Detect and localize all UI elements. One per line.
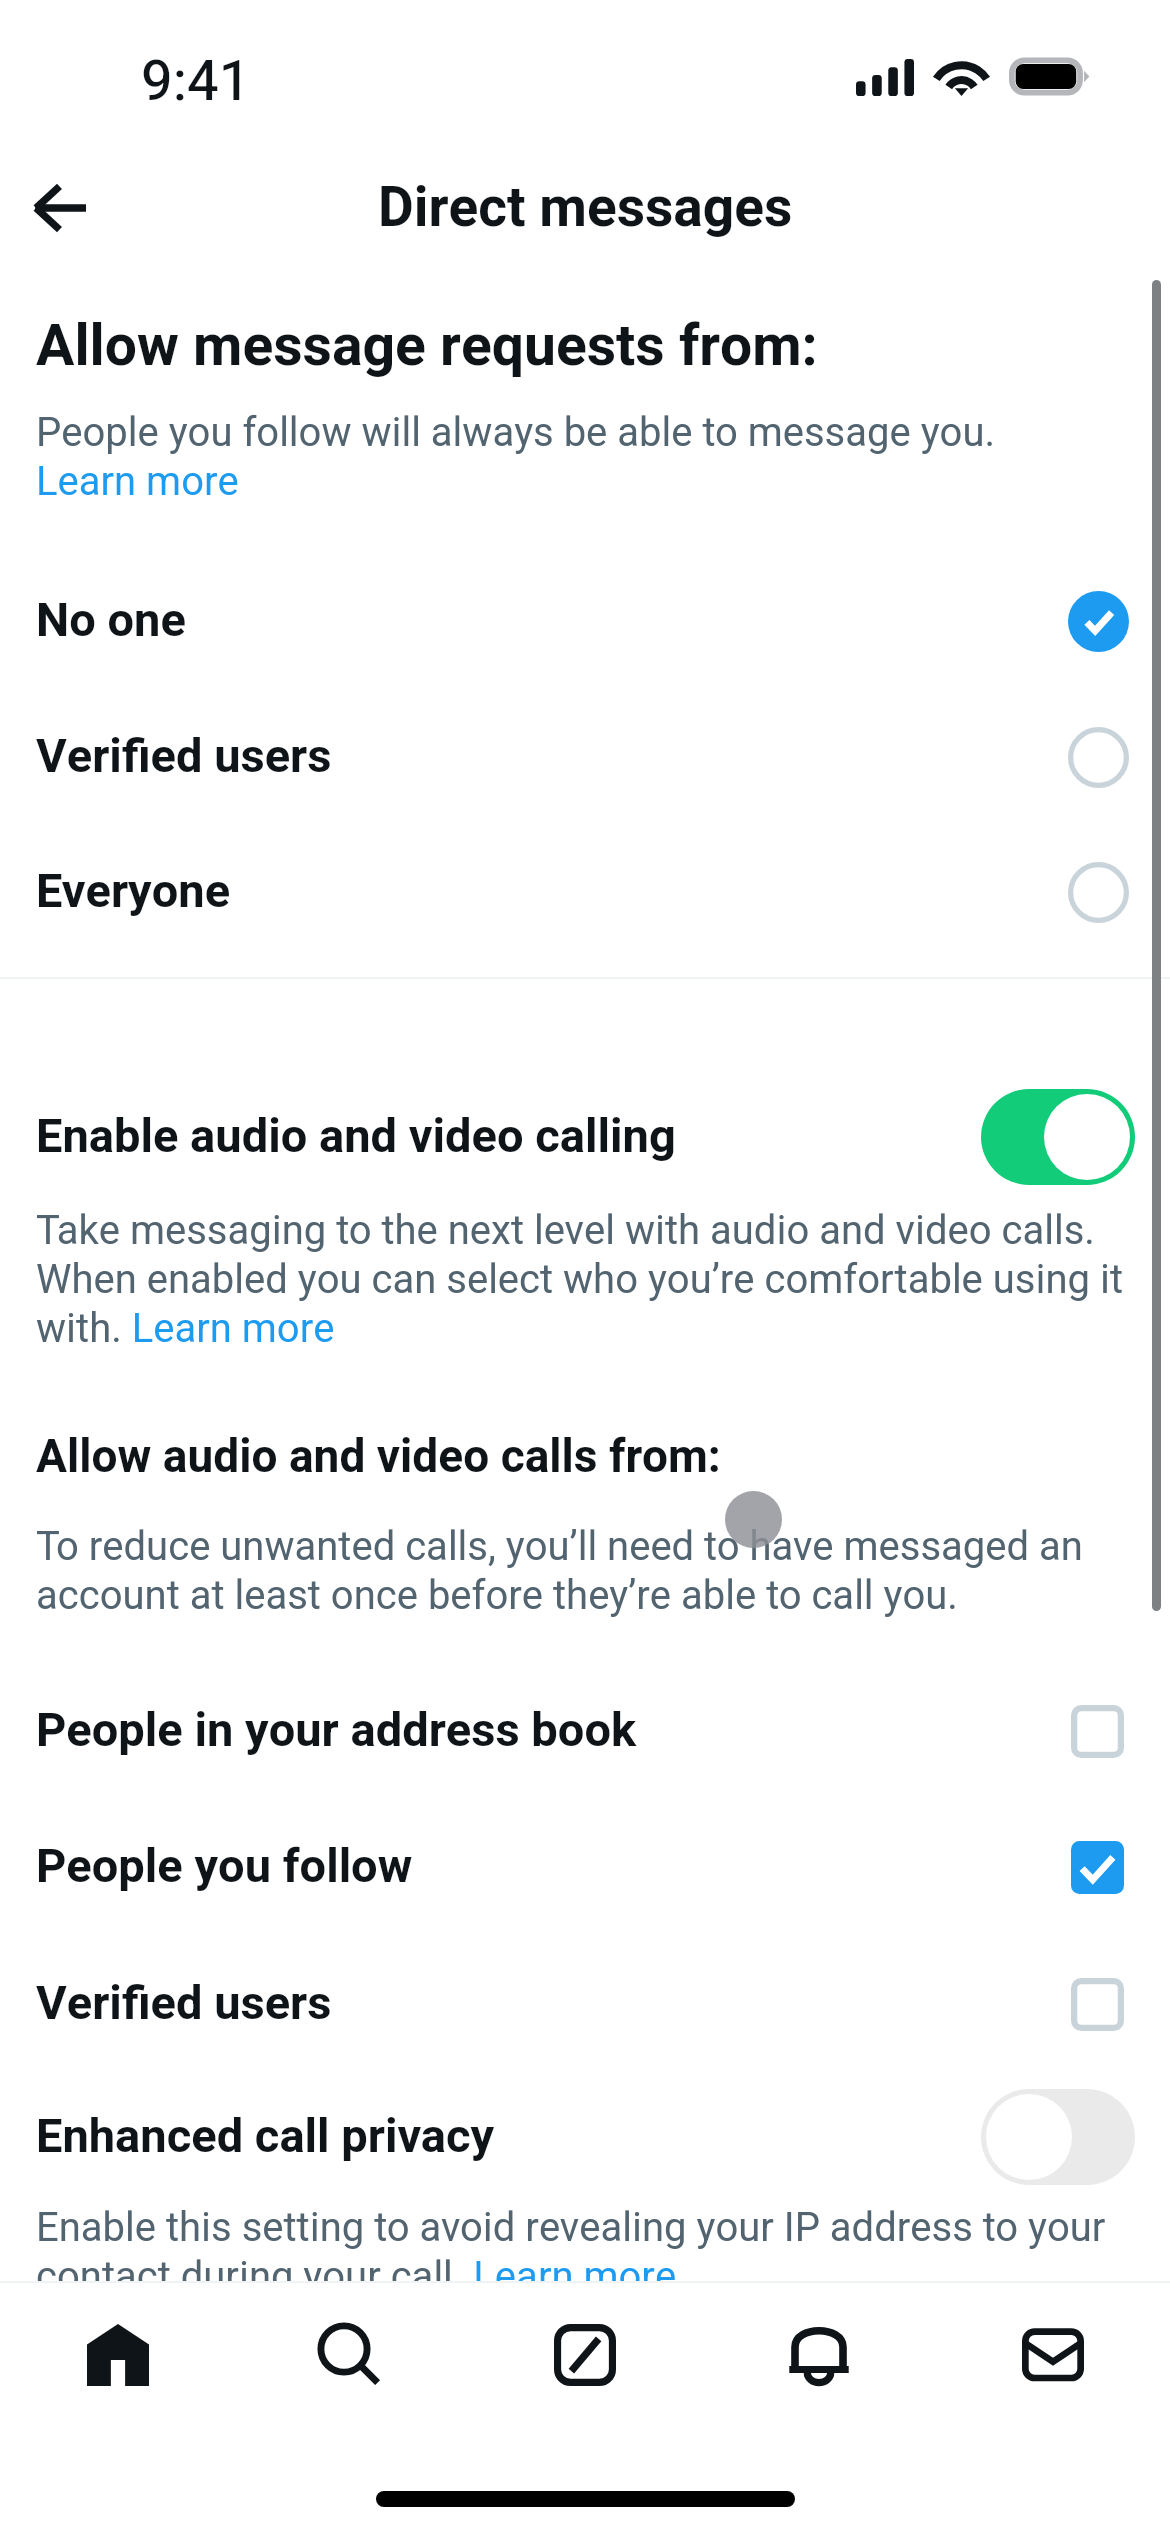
- staticText: Direct messages: [378, 168, 793, 249]
- staticText: Verified users: [36, 723, 332, 792]
- button[interactable]: Messages: [983, 2285, 1123, 2425]
- button[interactable]: People in your address book: [0, 1663, 1170, 1799]
- staticText: To reduce unwanted calls, you’ll need to…: [36, 1518, 1101, 1626]
- staticText: People you follow will always be able to…: [36, 404, 1056, 512]
- staticText: Allow audio and video calls from:: [36, 1424, 721, 1492]
- button[interactable]: Home: [48, 2285, 188, 2425]
- button[interactable]: Verified users: [0, 689, 1170, 825]
- button[interactable]: No one: [0, 553, 1170, 689]
- staticText: People you follow: [36, 1833, 413, 1902]
- button[interactable]: Enable audio and video calling: [0, 1069, 1170, 1205]
- button[interactable]: Notifications: [749, 2283, 889, 2423]
- staticText: Enable this setting to avoid revealing y…: [36, 2199, 1111, 2307]
- button[interactable]: Everyone: [0, 824, 1170, 960]
- staticText: Enhanced call privacy: [36, 2103, 981, 2172]
- staticText: Take messaging to the next level with au…: [36, 1202, 1136, 1359]
- button[interactable]: Search: [280, 2285, 420, 2425]
- button[interactable]: Enhanced call privacy: [0, 2069, 1170, 2205]
- button[interactable]: Grok: [515, 2285, 655, 2425]
- button[interactable]: Back: [9, 158, 109, 258]
- staticText: Enable audio and video calling: [36, 1103, 981, 1172]
- button[interactable]: People you follow: [0, 1799, 1170, 1935]
- staticText: Verified users: [36, 1970, 332, 2039]
- staticText: People in your address book: [36, 1697, 637, 1766]
- staticText: Allow message requests from:: [36, 305, 818, 389]
- staticText: Everyone: [36, 858, 231, 927]
- staticText: 9:41: [141, 41, 251, 123]
- staticText: No one: [36, 587, 186, 656]
- button[interactable]: Verified users: [0, 1936, 1170, 2072]
